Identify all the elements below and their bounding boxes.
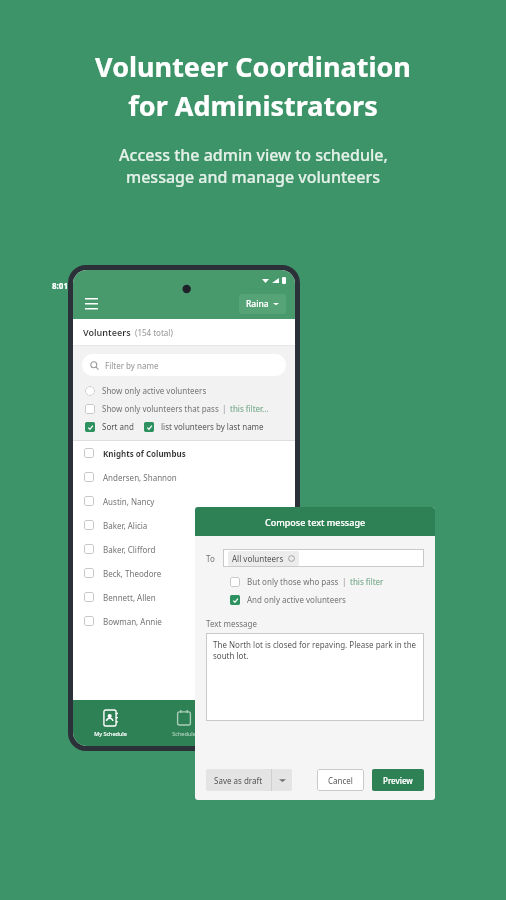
- staticText: Text message: [206, 618, 258, 629]
- staticText: Baker, Clifford: [103, 544, 156, 555]
- button[interactable]: More draft options: [272, 769, 292, 791]
- button[interactable]: Beck, Theodore: [73, 561, 295, 585]
- staticText: |: [222, 403, 227, 414]
- button[interactable]: Filter by name: [82, 354, 286, 376]
- staticText: Filter by name: [105, 360, 159, 371]
- staticText: this filter...: [230, 403, 269, 414]
- staticText: Schedule: [172, 730, 196, 737]
- button[interactable]: Open Positions: [221, 700, 295, 746]
- staticText: for Administrators: [128, 87, 378, 124]
- staticText: 8:01: [52, 280, 68, 291]
- staticText: Andersen, Shannon: [103, 472, 177, 483]
- staticText: All volunteers: [232, 553, 284, 564]
- staticText: Bennett, Allen: [103, 592, 156, 603]
- button[interactable]: Baker, Clifford: [73, 537, 295, 561]
- button[interactable]: Baker, Alicia: [73, 513, 295, 537]
- button[interactable]: Menu: [82, 295, 100, 313]
- staticText: Save as draft: [214, 775, 263, 786]
- button[interactable]: Austin, Nancy: [73, 489, 295, 513]
- button[interactable]: Show only volunteers that pass: [82, 403, 286, 414]
- staticText: Show only volunteers that pass: [102, 403, 219, 414]
- staticText: this filter: [350, 576, 384, 587]
- staticText: My Schedule: [94, 730, 127, 737]
- staticText: Access the admin view to schedule,: [119, 144, 388, 166]
- staticText: Austin, Nancy: [103, 496, 155, 507]
- staticText: Volunteer Coordination: [95, 48, 411, 85]
- button[interactable]: The North lot is closed for repaving. Pl…: [206, 633, 424, 721]
- button[interactable]: My Schedule: [73, 700, 147, 746]
- button[interactable]: Bowman, Annie: [73, 609, 295, 633]
- button[interactable]: Raina: [239, 294, 286, 314]
- button[interactable]: But only those who pass: [230, 576, 424, 587]
- staticText: |: [342, 576, 347, 587]
- staticText: Raina: [246, 298, 269, 310]
- staticText: Preview: [383, 775, 413, 786]
- staticText: Compose text message: [265, 516, 366, 528]
- staticText: (154 total): [135, 327, 173, 338]
- button[interactable]: Show only active volunteers: [82, 385, 286, 396]
- staticText: Knights of Columbus: [103, 448, 186, 459]
- button[interactable]: Sort and: [82, 421, 286, 432]
- staticText: message and manage volunteers: [126, 166, 380, 188]
- staticText: list volunteers by last name: [161, 421, 264, 432]
- staticText: But only those who pass: [247, 576, 339, 587]
- button[interactable]: Save as draft: [206, 769, 271, 791]
- staticText: Sort and: [102, 421, 134, 432]
- staticText: To: [206, 553, 215, 564]
- button[interactable]: Andersen, Shannon: [73, 465, 295, 489]
- staticText: And only active volunteers: [247, 594, 346, 605]
- staticText: Bowman, Annie: [103, 616, 162, 627]
- button[interactable]: Cancel: [317, 769, 364, 791]
- staticText: The North lot is closed for repaving. Pl…: [213, 639, 417, 662]
- button[interactable]: Schedule: [147, 700, 221, 746]
- staticText: Volunteers: [83, 326, 131, 338]
- button[interactable]: All volunteers: [223, 549, 424, 567]
- button[interactable]: Knights of Columbus: [73, 441, 295, 465]
- staticText: Baker, Alicia: [103, 520, 148, 531]
- staticText: Beck, Theodore: [103, 568, 162, 579]
- staticText: Cancel: [328, 775, 353, 786]
- staticText: Show only active volunteers: [102, 385, 207, 396]
- button[interactable]: And only active volunteers: [230, 594, 424, 605]
- button[interactable]: Preview: [372, 769, 424, 791]
- button[interactable]: Bennett, Allen: [73, 585, 295, 609]
